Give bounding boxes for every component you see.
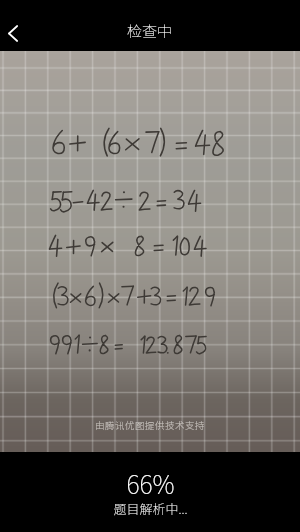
staticText: 66% bbox=[126, 465, 175, 501]
staticText: 由腾讯优图提供技术支持 bbox=[95, 418, 206, 432]
staticText: 题目解析中... bbox=[113, 499, 188, 518]
button[interactable]: Back bbox=[0, 13, 42, 51]
staticText: 检查中 bbox=[127, 20, 173, 42]
